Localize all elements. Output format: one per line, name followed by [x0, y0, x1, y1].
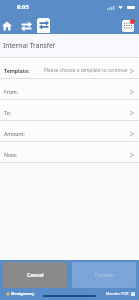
staticText: Template: [4, 67, 30, 74]
staticText: Transfer [94, 272, 115, 279]
staticText: Cancel [27, 272, 44, 279]
staticText: Member FDIC [106, 291, 130, 296]
staticText: From: [4, 88, 19, 95]
button[interactable]: Transfers [20, 20, 32, 32]
staticText: To: [4, 109, 12, 116]
button[interactable]: Notifications [120, 18, 137, 35]
staticText: Note: [4, 151, 18, 158]
button[interactable]: Note: [0, 142, 139, 162]
button[interactable]: From: [0, 79, 139, 99]
button[interactable]: Payments [37, 18, 50, 33]
staticText: Montgomery [11, 291, 35, 296]
button[interactable]: To: [0, 100, 139, 120]
staticText: Internal Transfer [3, 41, 56, 50]
staticText: 8:05 [17, 3, 29, 11]
button[interactable]: Amount: [0, 121, 139, 141]
button[interactable]: Transfer [72, 262, 136, 288]
button[interactable]: Cancel [3, 262, 67, 288]
staticText: Please choose a template to continue [44, 67, 128, 73]
button[interactable]: Home [1, 20, 13, 32]
button[interactable]: Template: [0, 58, 139, 78]
staticText: Amount: [4, 130, 25, 137]
